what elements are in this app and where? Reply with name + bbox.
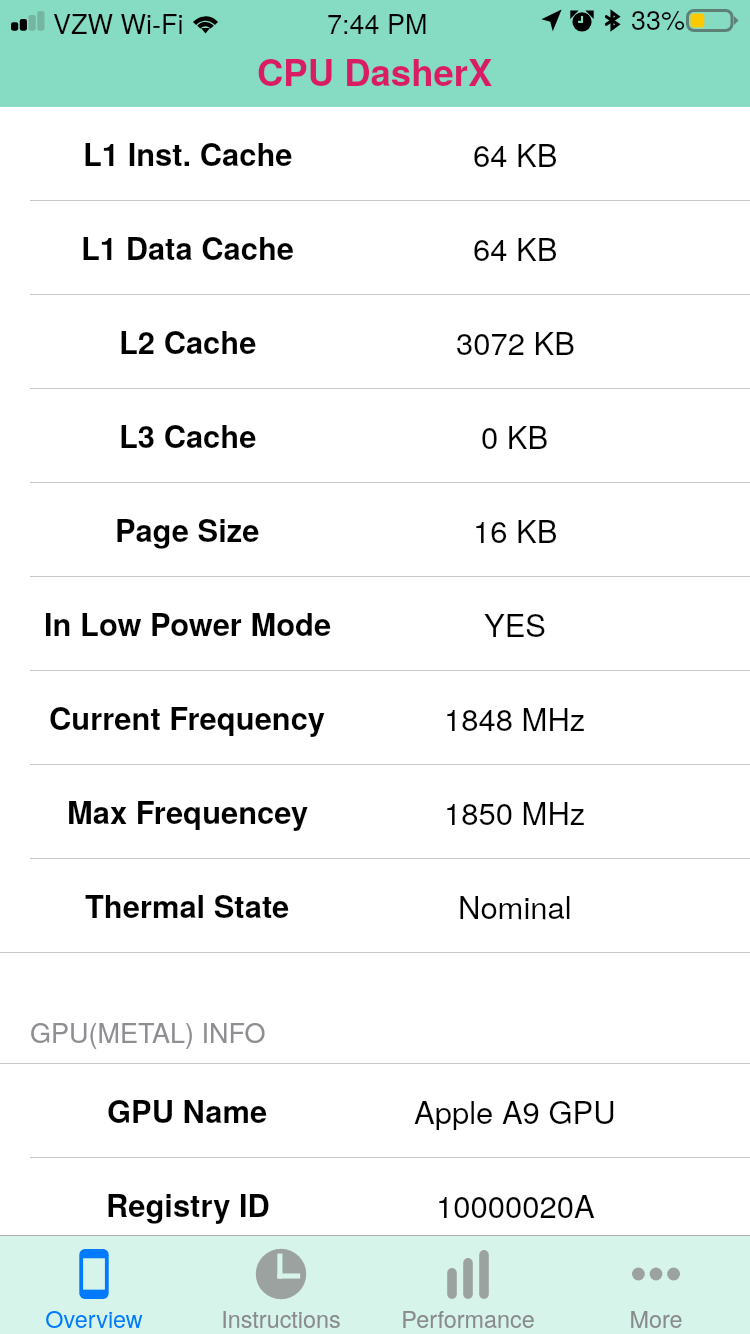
button[interactable]: Thermal State <box>0 859 750 952</box>
staticText: 64 KB <box>473 225 558 269</box>
staticText: Current Frequency <box>49 695 326 739</box>
other: Signal <box>11 8 45 38</box>
staticText: In Low Power Mode <box>44 601 332 645</box>
staticText: 1850 MHz <box>444 789 586 833</box>
staticText: Apple A9 GPU <box>414 1088 616 1132</box>
staticText: YES <box>484 601 547 645</box>
staticText: 7:44 PM <box>327 3 428 42</box>
staticText: L2 Cache <box>119 319 257 363</box>
other: Location <box>541 8 562 32</box>
other: Wi-Fi <box>190 12 221 34</box>
button[interactable]: L1 Inst. Cache <box>0 107 750 200</box>
button[interactable]: L1 Data Cache <box>0 201 750 294</box>
staticText: Page Size <box>115 507 260 551</box>
staticText: 16 KB <box>473 507 558 551</box>
staticText: 0 KB <box>481 413 549 457</box>
button[interactable]: L3 Cache <box>0 389 750 482</box>
button[interactable]: Page Size <box>0 483 750 576</box>
staticText: Registry ID <box>106 1182 270 1226</box>
staticText: GPU Name <box>107 1088 268 1132</box>
button[interactable]: GPU Name <box>0 1064 750 1157</box>
button[interactable]: In Low Power Mode <box>0 577 750 670</box>
button[interactable]: Performance <box>374 1236 562 1334</box>
button[interactable]: Registry ID <box>0 1158 750 1251</box>
other: Bluetooth <box>605 11 619 30</box>
staticText: Instructions <box>221 1301 341 1334</box>
staticText: CPU DasherX <box>257 45 493 97</box>
staticText: Performance <box>401 1301 535 1334</box>
staticText: L3 Cache <box>119 413 257 457</box>
staticText: Thermal State <box>85 883 290 927</box>
staticText: More <box>629 1301 683 1334</box>
staticText: GPU(METAL) INFO <box>30 1012 266 1051</box>
button[interactable]: L2 Cache <box>0 295 750 388</box>
staticText: L1 Data Cache <box>81 225 295 269</box>
staticText: 3072 KB <box>456 319 575 363</box>
other: Alarm <box>571 6 593 32</box>
staticText: VZW Wi-Fi <box>53 3 184 42</box>
button[interactable]: Overview <box>0 1236 187 1334</box>
button[interactable]: Max Frequencey <box>0 765 750 858</box>
button[interactable]: Instructions <box>187 1236 374 1334</box>
staticText: Max Frequencey <box>67 789 309 833</box>
staticText: 33% <box>631 0 686 38</box>
button[interactable]: Current Frequency <box>0 671 750 764</box>
staticText: 10000020A <box>436 1182 595 1226</box>
staticText: Nominal <box>458 883 572 927</box>
button[interactable]: More <box>562 1236 750 1334</box>
staticText: 1848 MHz <box>444 695 586 739</box>
staticText: 64 KB <box>473 131 558 175</box>
staticText: Overview <box>45 1301 143 1334</box>
staticText: L1 Inst. Cache <box>83 131 293 175</box>
